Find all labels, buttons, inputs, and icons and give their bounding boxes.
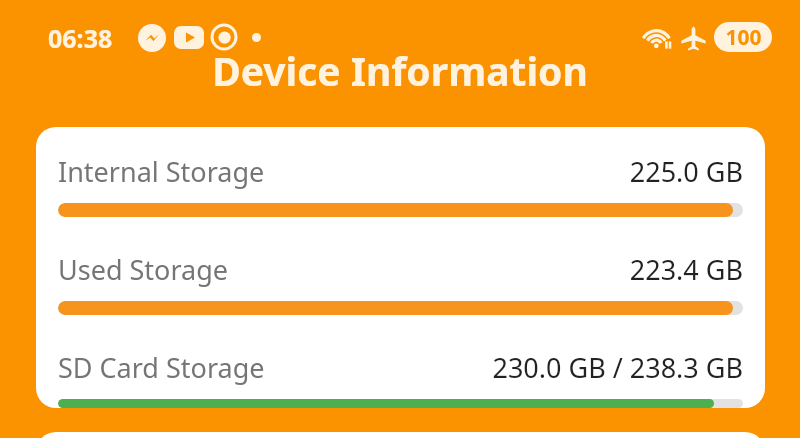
staticText: 100 <box>725 23 762 52</box>
staticText: 225.0 GB <box>629 153 743 190</box>
staticText: 230.0 GB / 238.3 GB <box>492 349 743 386</box>
staticText: SD Card Storage <box>58 349 265 386</box>
staticText: Used Storage <box>58 251 229 288</box>
button[interactable]: Internal Storage <box>36 127 765 408</box>
staticText: Device Information <box>0 44 800 97</box>
other: WhatsApp <box>210 23 238 51</box>
other: Messenger <box>138 24 166 52</box>
other: Airplane mode <box>680 24 707 51</box>
other: YouTube <box>174 26 204 49</box>
other: Wi-Fi <box>644 24 672 52</box>
staticText: 223.4 GB <box>629 251 743 288</box>
staticText: 06:38 <box>48 21 113 55</box>
staticText: Internal Storage <box>58 153 265 190</box>
button[interactable] <box>36 432 765 438</box>
